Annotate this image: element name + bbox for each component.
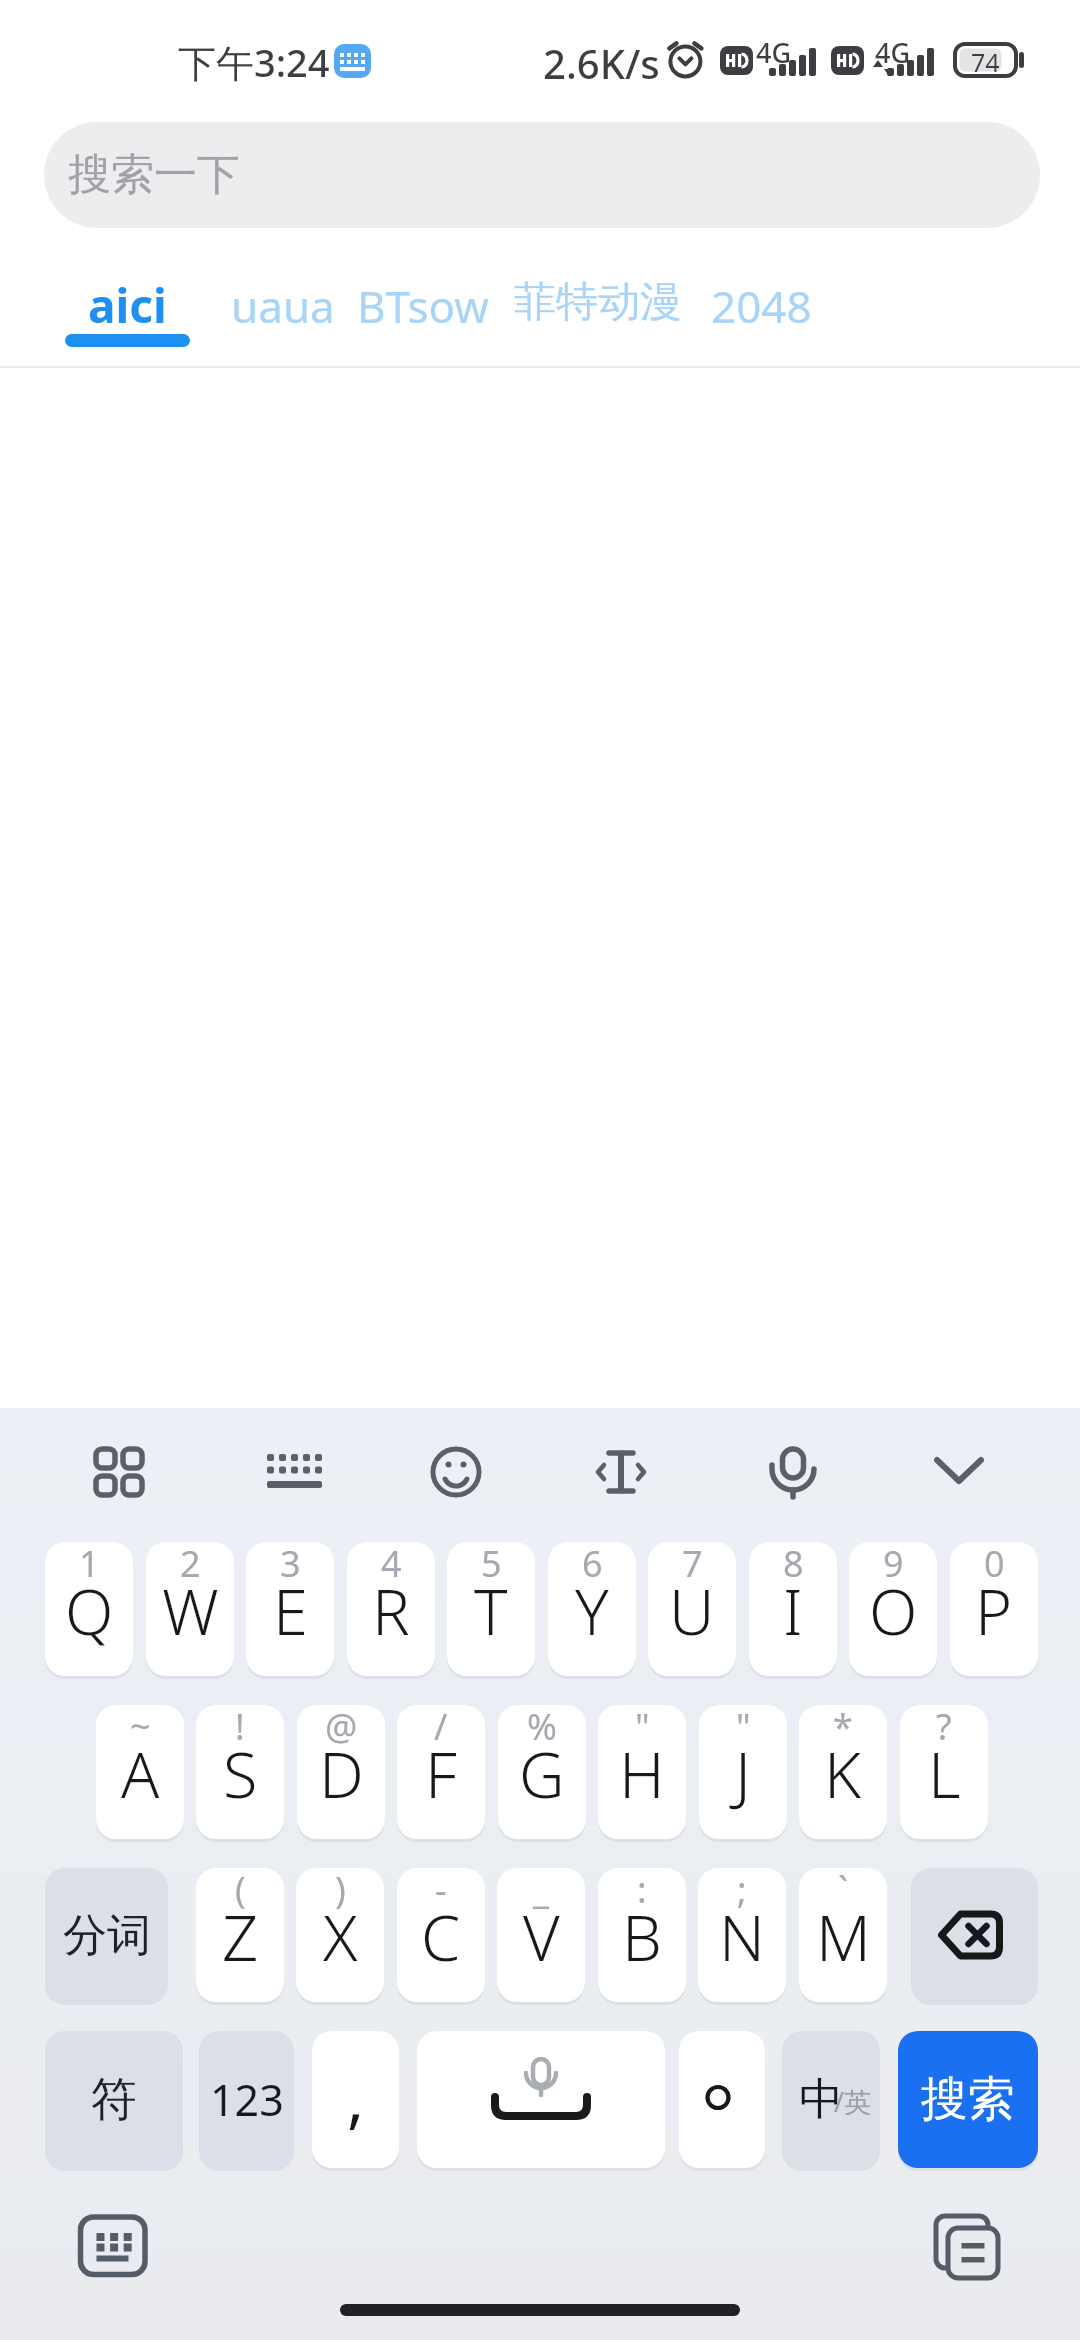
staticText: /英 xyxy=(834,2083,872,2120)
button[interactable]: 搜索一下 xyxy=(44,122,1040,228)
staticText: D xyxy=(319,1731,364,1817)
button[interactable] xyxy=(581,1432,661,1512)
button[interactable] xyxy=(911,1868,1038,2002)
staticText: 菲特动漫 xyxy=(514,276,682,329)
button[interactable]: * xyxy=(799,1705,887,1839)
staticText: L xyxy=(928,1731,961,1817)
button[interactable] xyxy=(417,2031,665,2168)
button[interactable] xyxy=(416,1432,496,1512)
button[interactable]: uaua xyxy=(231,276,335,336)
staticText: 4G xyxy=(875,34,911,71)
button[interactable]: 4 xyxy=(347,1542,435,1676)
button[interactable]: 2048 xyxy=(711,276,812,336)
staticText: 搜索 xyxy=(921,2070,1015,2129)
button[interactable]: 1 xyxy=(45,1542,133,1676)
button[interactable]: " xyxy=(699,1705,787,1839)
button[interactable]: 8 xyxy=(749,1542,837,1676)
staticText: O xyxy=(869,1568,918,1654)
button[interactable]: ! xyxy=(196,1705,284,1839)
staticText: ! xyxy=(235,1705,245,1751)
button[interactable] xyxy=(679,2031,765,2168)
staticText: K xyxy=(824,1731,862,1817)
button[interactable]: 3 xyxy=(246,1542,334,1676)
staticText: V xyxy=(523,1894,560,1980)
staticText: S xyxy=(223,1731,258,1817)
button[interactable]: - xyxy=(397,1868,485,2002)
button[interactable]: : xyxy=(598,1868,686,2002)
button[interactable]: ( xyxy=(196,1868,284,2002)
staticText: 6 xyxy=(582,1542,603,1588)
button[interactable]: 菲特动漫 xyxy=(514,276,682,329)
staticText: 中 xyxy=(799,2072,843,2127)
button[interactable] xyxy=(753,1432,833,1512)
staticText: 9 xyxy=(883,1542,904,1588)
button[interactable]: 123 xyxy=(199,2031,294,2168)
button[interactable]: 搜索 xyxy=(898,2031,1038,2168)
staticText: ? xyxy=(936,1705,952,1751)
button[interactable]: aici xyxy=(65,262,190,347)
button[interactable]: 5 xyxy=(447,1542,535,1676)
staticText: " xyxy=(736,1705,751,1751)
staticText: @ xyxy=(325,1705,358,1751)
staticText: 2048 xyxy=(711,276,812,336)
button[interactable]: ` xyxy=(799,1868,887,2002)
staticText: Z xyxy=(222,1894,259,1980)
staticText: - xyxy=(435,1868,447,1914)
staticText: 搜索一下 xyxy=(68,148,240,202)
staticText: ~ xyxy=(130,1705,151,1751)
staticText: : xyxy=(637,1868,647,1914)
button[interactable] xyxy=(70,2206,156,2286)
button[interactable]: 分词 xyxy=(45,1868,168,2002)
staticText: % xyxy=(527,1705,557,1751)
staticText: " xyxy=(635,1705,650,1751)
button[interactable]: ? xyxy=(900,1705,988,1839)
button[interactable] xyxy=(255,1432,335,1512)
staticText: 74 xyxy=(971,45,1000,79)
staticText: / xyxy=(434,1705,448,1751)
staticText: E xyxy=(273,1568,308,1654)
staticText: 2 xyxy=(180,1542,201,1588)
button[interactable]: / xyxy=(397,1705,485,1839)
button[interactable]: ~ xyxy=(96,1705,184,1839)
button[interactable]: 6 xyxy=(548,1542,636,1676)
staticText: * xyxy=(833,1705,853,1751)
staticText: uaua xyxy=(231,276,335,336)
staticText: 1 xyxy=(79,1542,100,1588)
staticText: P xyxy=(975,1568,1013,1654)
button[interactable]: 7 xyxy=(648,1542,736,1676)
button[interactable]: " xyxy=(598,1705,686,1839)
staticText: U xyxy=(669,1568,715,1654)
staticText: I xyxy=(783,1568,803,1654)
staticText: ` xyxy=(838,1868,849,1914)
staticText: F xyxy=(425,1731,457,1817)
button[interactable]: 符 xyxy=(45,2031,183,2168)
staticText: aici xyxy=(88,274,167,337)
button[interactable]: _ xyxy=(497,1868,585,2002)
staticText: N xyxy=(719,1894,765,1980)
button[interactable]: BTsow xyxy=(357,276,489,336)
button[interactable] xyxy=(919,1432,999,1512)
button[interactable]: ; xyxy=(698,1868,786,2002)
staticText: ; xyxy=(737,1868,747,1914)
staticText: 2.6K/s xyxy=(543,36,660,90)
staticText: R xyxy=(372,1568,410,1654)
button[interactable] xyxy=(79,1432,159,1512)
staticText: 5 xyxy=(481,1542,502,1588)
button[interactable]: % xyxy=(498,1705,586,1839)
button[interactable]: 中 xyxy=(782,2031,880,2168)
staticText: ( xyxy=(235,1868,246,1914)
staticText: X xyxy=(323,1894,358,1980)
button[interactable]: @ xyxy=(297,1705,385,1839)
staticText: H xyxy=(619,1731,665,1817)
staticText: Q xyxy=(65,1568,114,1654)
staticText: W xyxy=(162,1568,219,1654)
button[interactable]: 0 xyxy=(950,1542,1038,1676)
button[interactable]: ) xyxy=(296,1868,384,2002)
button[interactable]: 2 xyxy=(146,1542,234,1676)
button[interactable]: 9 xyxy=(849,1542,937,1676)
button[interactable]: , xyxy=(312,2031,399,2168)
staticText: BTsow xyxy=(357,276,489,336)
staticText: 4 xyxy=(381,1542,402,1588)
button[interactable] xyxy=(925,2205,1011,2291)
staticText: A xyxy=(121,1731,160,1817)
